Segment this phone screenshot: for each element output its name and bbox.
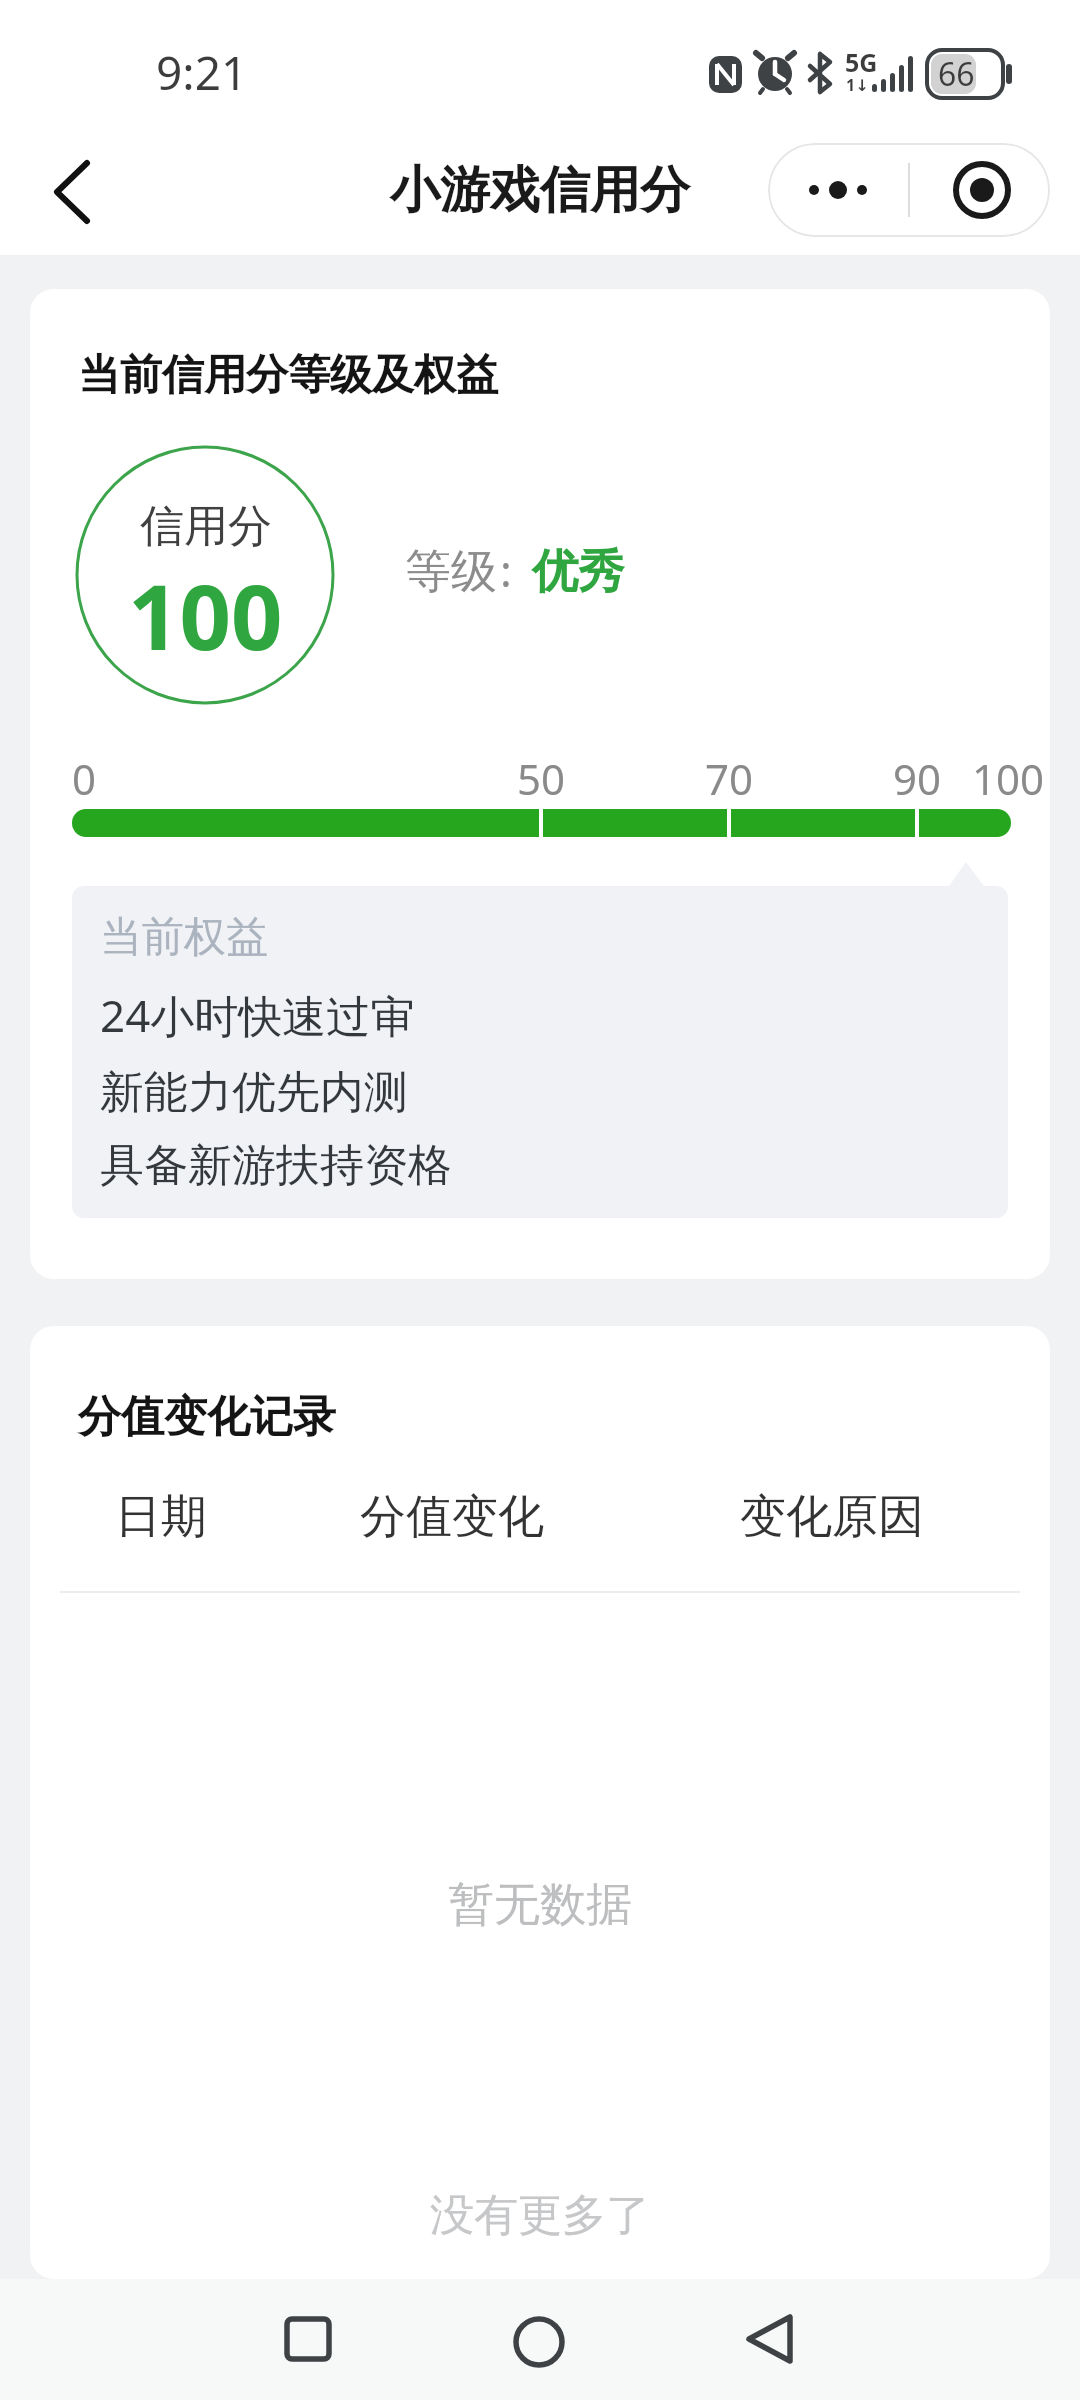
staticText: 暂无数据 — [448, 1876, 632, 1934]
staticText: 日期 — [115, 1488, 207, 1546]
staticText: 66 — [938, 52, 975, 96]
staticText: 分值变化记录 — [78, 1390, 336, 1444]
staticText: 具备新游扶持资格 — [100, 1138, 452, 1193]
staticText: 24小时快速过审 — [100, 985, 415, 1045]
staticText: 9:21 — [156, 41, 248, 104]
staticText: : — [500, 540, 512, 600]
staticText: 5G — [845, 45, 878, 79]
staticText: 信用分 — [140, 499, 272, 554]
staticText: 分值变化 — [360, 1488, 544, 1546]
button[interactable] — [30, 150, 120, 240]
button[interactable] — [260, 2292, 355, 2387]
staticText: 没有更多了 — [430, 2188, 650, 2243]
button[interactable] — [768, 143, 1050, 237]
staticText: 1↓ — [846, 74, 869, 96]
staticText: 100 — [972, 750, 1045, 807]
staticText: 70 — [705, 750, 754, 807]
button[interactable] — [722, 2292, 817, 2387]
staticText: 新能力优先内测 — [100, 1065, 408, 1120]
staticText: 变化原因 — [740, 1488, 924, 1546]
button[interactable] — [492, 2292, 587, 2387]
staticText: 50 — [517, 750, 566, 807]
staticText: 当前权益 — [100, 911, 268, 964]
staticText: 0 — [72, 750, 97, 807]
staticText: 等级 — [405, 543, 497, 601]
staticText: 90 — [893, 750, 942, 807]
staticText: 当前信用分等级及权益 — [78, 349, 498, 402]
staticText: 100 — [128, 554, 283, 677]
staticText: 小游戏信用分 — [390, 159, 690, 222]
staticText: 优秀 — [532, 543, 624, 601]
